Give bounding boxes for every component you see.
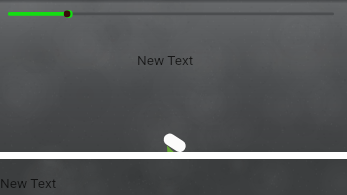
button[interactable]: Slider [0,0,347,28]
button[interactable]: Switch [160,128,190,158]
button[interactable]: New Text [137,52,194,68]
button[interactable]: New Text [0,175,57,191]
